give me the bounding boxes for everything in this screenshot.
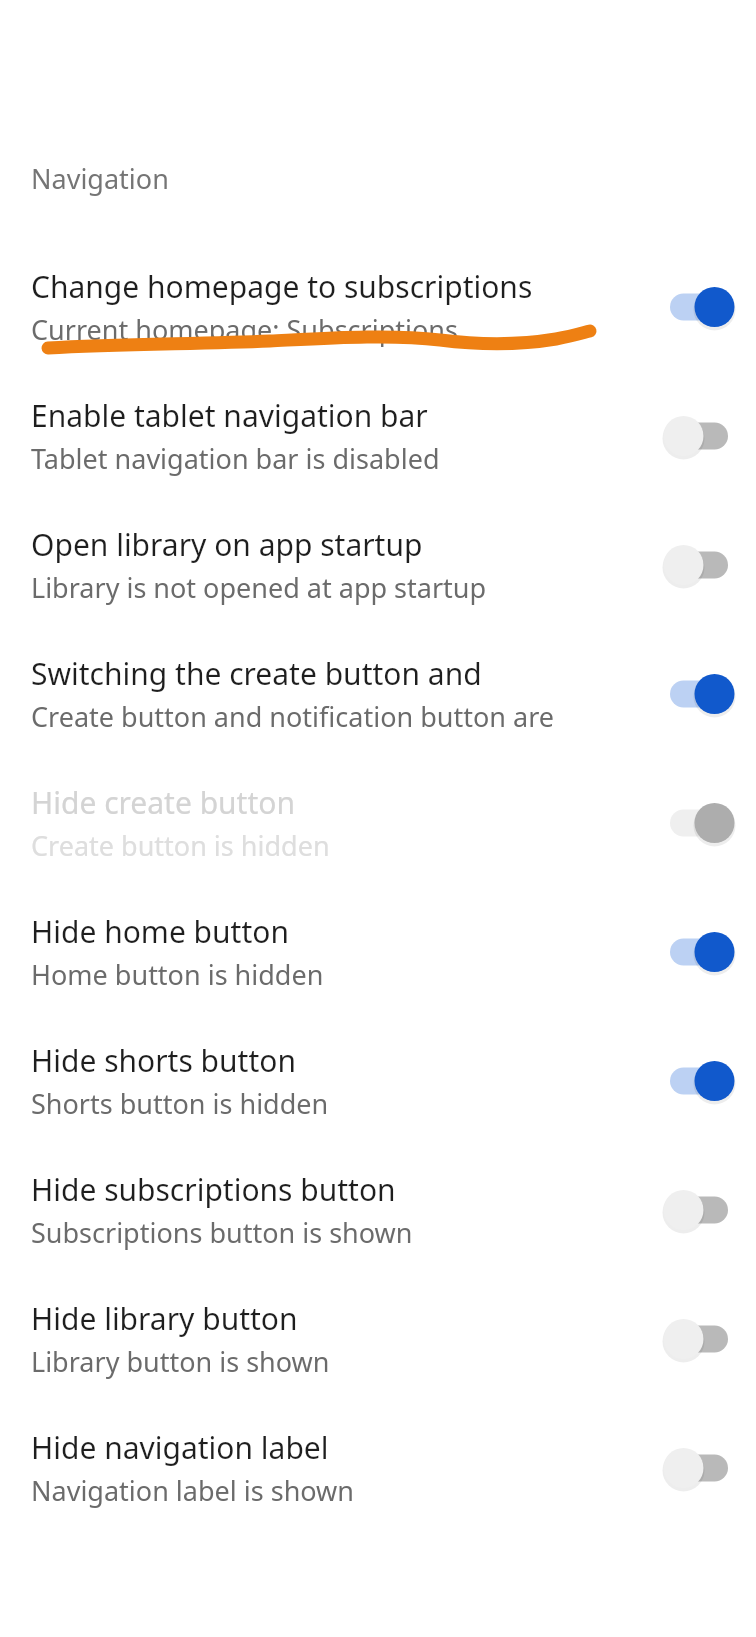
button[interactable]: Toggle, off xyxy=(651,1291,747,1387)
staticText: Shorts button is hidden xyxy=(31,1085,329,1122)
button[interactable]: Hide create button xyxy=(0,758,756,887)
button[interactable]: Toggle, on xyxy=(651,646,747,742)
button[interactable]: Enable tablet navigation bar xyxy=(0,371,756,500)
staticText: Hide create button xyxy=(31,782,295,823)
button[interactable]: Toggle, on xyxy=(651,904,747,1000)
staticText: Navigation label is shown xyxy=(31,1472,355,1509)
button[interactable]: Toggle, off xyxy=(651,517,747,613)
staticText: Library is not opened at app startup xyxy=(31,569,487,606)
button[interactable]: Hide library button xyxy=(0,1274,756,1403)
staticText: Hide shorts button xyxy=(31,1040,296,1081)
staticText: Change homepage to subscriptions xyxy=(31,266,533,307)
button[interactable]: Switching the create button and notifica… xyxy=(0,629,756,758)
staticText: Library button is shown xyxy=(31,1343,330,1380)
button[interactable]: Toggle, off xyxy=(651,1420,747,1516)
button[interactable]: Toggle, off xyxy=(651,388,747,484)
button[interactable]: Open library on app startup xyxy=(0,500,756,629)
button[interactable]: Toggle, on, disabled xyxy=(651,775,747,871)
button[interactable]: Toggle, on xyxy=(651,259,747,355)
button[interactable]: Hide subscriptions button xyxy=(0,1145,756,1274)
button[interactable]: Hide shorts button xyxy=(0,1016,756,1145)
staticText: Home button is hidden xyxy=(31,956,324,993)
staticText: Hide library button xyxy=(31,1298,298,1339)
staticText: Create button is hidden xyxy=(31,827,330,864)
staticText: Subscriptions button is shown xyxy=(31,1214,413,1251)
button[interactable]: Toggle, on xyxy=(651,1033,747,1129)
staticText: Hide navigation label xyxy=(31,1427,329,1468)
staticText: Navigation xyxy=(31,160,169,197)
button[interactable]: Change homepage to subscriptions xyxy=(0,242,756,371)
staticText: Tablet navigation bar is disabled xyxy=(31,440,440,477)
staticText: Hide subscriptions button xyxy=(31,1169,396,1210)
staticText: Enable tablet navigation bar xyxy=(31,395,428,436)
staticText: Hide home button xyxy=(31,911,289,952)
button[interactable]: Toggle, off xyxy=(651,1162,747,1258)
button[interactable]: Hide home button xyxy=(0,887,756,1016)
staticText: Open library on app startup xyxy=(31,524,423,565)
button[interactable]: Hide navigation label xyxy=(0,1403,756,1532)
staticText: Current homepage: Subscriptions xyxy=(31,311,458,348)
staticText: Switching the create button and notifica… xyxy=(31,653,643,694)
staticText: Create button and notification button ar… xyxy=(31,698,643,735)
